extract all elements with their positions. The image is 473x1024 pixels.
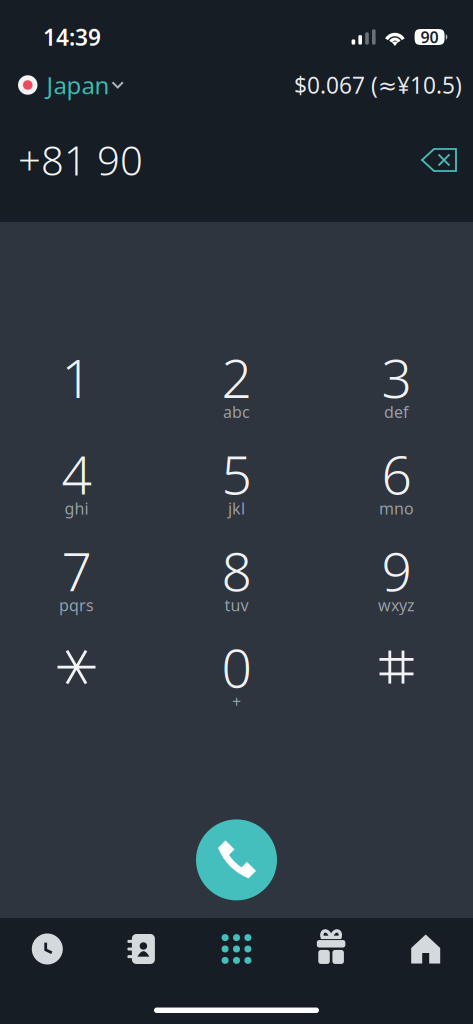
staticText: 90 [421, 26, 439, 48]
button[interactable]: Japan [0, 68, 132, 102]
button[interactable]: Delete [408, 134, 470, 186]
button[interactable]: Offers [284, 918, 378, 980]
staticText: 0 [221, 632, 251, 702]
staticText: mno [379, 498, 414, 519]
staticText: 6 [381, 438, 411, 509]
staticText: $0.067 (≈¥10.5) [294, 70, 462, 100]
staticText: 7 [61, 535, 91, 606]
button[interactable]: 5 [156, 434, 316, 530]
button[interactable]: 7 [0, 530, 156, 627]
button[interactable]: 3 [316, 337, 473, 434]
button[interactable]: Recents [0, 918, 95, 980]
staticText: 14:39 [43, 22, 101, 52]
staticText: ghi [64, 498, 88, 519]
staticText: tuv [224, 594, 248, 616]
button[interactable]: Home [378, 918, 473, 980]
staticText: pqrs [59, 594, 94, 616]
button[interactable]: Pound [316, 627, 473, 723]
button[interactable]: 0 [156, 627, 316, 723]
staticText: 4 [61, 438, 91, 509]
button[interactable]: 9 [316, 530, 473, 627]
staticText: def [384, 401, 409, 422]
staticText: abc [223, 401, 250, 422]
staticText: + [232, 691, 241, 712]
button[interactable]: Contacts [95, 918, 189, 980]
staticText: 2 [221, 342, 251, 413]
button[interactable]: 1 [0, 337, 156, 434]
button[interactable]: Call [196, 819, 277, 900]
button[interactable]: 6 [316, 434, 473, 530]
staticText: 9 [381, 535, 411, 606]
staticText: wxyz [378, 594, 415, 616]
staticText: 5 [221, 438, 251, 509]
button[interactable]: Keypad [189, 918, 284, 980]
button[interactable]: 4 [0, 434, 156, 530]
staticText: 3 [381, 342, 411, 413]
button[interactable]: Star [0, 627, 156, 723]
button[interactable]: 8 [156, 530, 316, 627]
staticText: Japan [46, 69, 109, 101]
button[interactable]: 2 [156, 337, 316, 434]
staticText: 8 [221, 535, 251, 606]
staticText: +81 90 [18, 133, 143, 186]
staticText: jkl [228, 498, 245, 519]
staticText: 1 [61, 342, 91, 413]
